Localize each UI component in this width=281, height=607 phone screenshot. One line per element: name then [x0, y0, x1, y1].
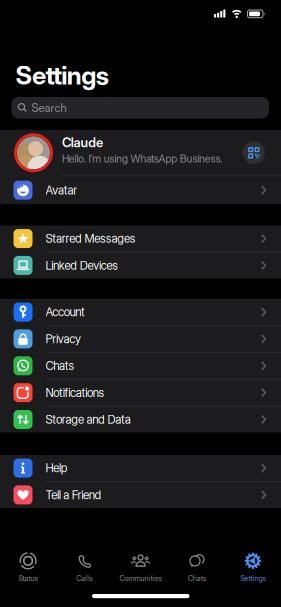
button[interactable]: Chats — [169, 548, 225, 586]
staticText: Linked Devices — [45, 258, 118, 272]
button[interactable]: Avatar — [0, 176, 281, 204]
staticText: Help — [45, 461, 68, 475]
staticText: Storage and Data — [45, 412, 131, 427]
staticText: Hello. I’m using WhatsApp Business. — [62, 152, 222, 165]
button[interactable]: Communities — [112, 548, 169, 586]
button[interactable]: Account — [0, 299, 281, 325]
staticText: Starred Messages — [45, 231, 136, 246]
button[interactable]: Storage and Data — [0, 406, 281, 432]
button[interactable]: Notifications — [0, 380, 281, 406]
button[interactable]: Tell a Friend — [0, 482, 281, 508]
button[interactable]: Starred Messages — [0, 225, 281, 252]
staticText: Search — [31, 101, 66, 115]
button[interactable]: Claude — [0, 130, 281, 175]
button[interactable]: QR code — [243, 142, 265, 164]
staticText: Account — [45, 305, 85, 319]
button[interactable]: Chats — [0, 353, 281, 379]
staticText: Communities — [119, 574, 161, 583]
staticText: Chats — [188, 574, 206, 583]
staticText: Privacy — [45, 332, 81, 346]
staticText: Settings — [240, 574, 265, 583]
button[interactable]: Help — [0, 455, 281, 481]
staticText: Status — [19, 574, 38, 583]
button[interactable]: Calls — [56, 548, 112, 586]
button[interactable]: Linked Devices — [0, 252, 281, 278]
button[interactable]: Settings — [225, 548, 281, 586]
staticText: Claude — [62, 134, 103, 150]
staticText: Calls — [76, 574, 92, 583]
staticText: Avatar — [45, 183, 77, 197]
button[interactable]: Search — [11, 97, 269, 118]
button[interactable]: Privacy — [0, 326, 281, 352]
staticText: Chats — [45, 359, 74, 373]
button[interactable]: Status — [0, 548, 56, 586]
staticText: Tell a Friend — [45, 488, 101, 502]
staticText: Settings — [15, 60, 109, 91]
staticText: Notifications — [45, 385, 104, 400]
